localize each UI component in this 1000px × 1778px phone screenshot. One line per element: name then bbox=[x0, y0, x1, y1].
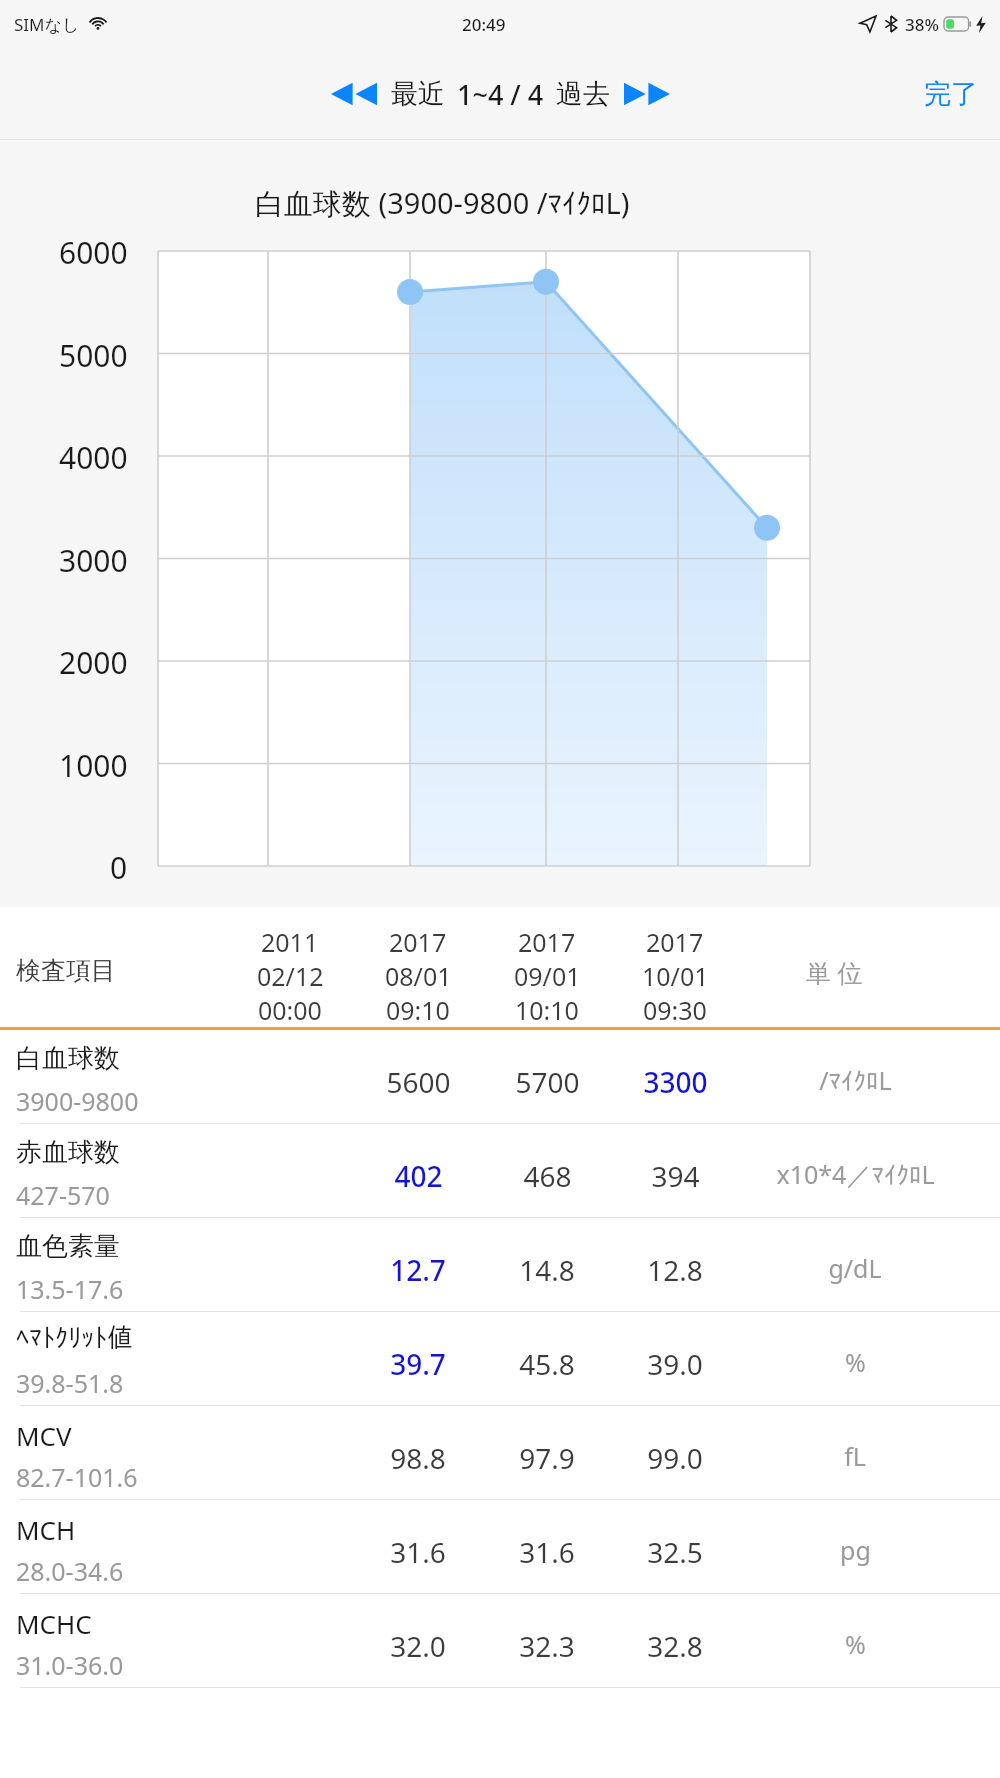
button[interactable]: ﾍﾏﾄｸﾘｯﾄ値 bbox=[0, 1312, 1000, 1406]
staticText: 過去 bbox=[556, 77, 610, 111]
staticText: 2011 bbox=[261, 925, 319, 959]
staticText: 39.7 bbox=[390, 1345, 446, 1383]
staticText: 5000 bbox=[59, 335, 128, 376]
staticText: 5700 bbox=[515, 1063, 580, 1101]
button[interactable]: MCH bbox=[0, 1500, 1000, 1594]
staticText: 13.5-17.6 bbox=[16, 1272, 124, 1306]
staticText: 468 bbox=[523, 1157, 572, 1195]
button[interactable]: 完了 bbox=[902, 63, 1000, 125]
staticText: 31.0-36.0 bbox=[16, 1648, 124, 1682]
staticText: MCHC bbox=[16, 1606, 92, 1641]
staticText: 09:30 bbox=[643, 993, 707, 1027]
staticText: 白血球数 (3900-9800 /ﾏｲｸﾛL) bbox=[255, 183, 630, 223]
staticText: 3300 bbox=[643, 1063, 708, 1101]
staticText: pg bbox=[840, 1533, 871, 1567]
staticText: 検査項目 bbox=[16, 955, 116, 986]
staticText: 45.8 bbox=[519, 1345, 575, 1383]
staticText: 31.6 bbox=[390, 1533, 446, 1571]
staticText: 14.8 bbox=[519, 1251, 575, 1289]
staticText: 99.0 bbox=[647, 1439, 703, 1477]
staticText: 赤血球数 bbox=[16, 1136, 120, 1169]
staticText: 2017 bbox=[518, 925, 576, 959]
button[interactable]: 血色素量 bbox=[0, 1218, 1000, 1312]
staticText: MCH bbox=[16, 1512, 76, 1547]
staticText: x10*4／ﾏｲｸﾛL bbox=[776, 1157, 935, 1191]
staticText: 10/01 bbox=[642, 959, 709, 993]
staticText: 5600 bbox=[386, 1063, 451, 1101]
staticText: 6000 bbox=[59, 232, 128, 273]
staticText: 97.9 bbox=[519, 1439, 575, 1477]
staticText: 2017 bbox=[646, 925, 704, 959]
staticText: ﾍﾏﾄｸﾘｯﾄ値 bbox=[16, 1324, 133, 1350]
staticText: 31.6 bbox=[519, 1533, 575, 1571]
staticText: 完了 bbox=[924, 77, 978, 111]
staticText: 09/01 bbox=[514, 959, 581, 993]
button[interactable]: 白血球数 bbox=[0, 1030, 1000, 1124]
staticText: 3000 bbox=[59, 540, 128, 581]
staticText: 1000 bbox=[59, 745, 128, 786]
staticText: /ﾏｲｸﾛL bbox=[819, 1063, 892, 1097]
staticText: 0 bbox=[110, 847, 128, 888]
staticText: 00:00 bbox=[258, 993, 322, 1027]
staticText: 2017 bbox=[389, 925, 447, 959]
staticText: 1~4 / 4 bbox=[457, 76, 544, 113]
staticText: 白血球数 bbox=[16, 1042, 120, 1075]
button[interactable]: 赤血球数 bbox=[0, 1124, 1000, 1218]
staticText: 02/12 bbox=[257, 959, 324, 993]
staticText: 32.8 bbox=[647, 1627, 703, 1665]
button[interactable]: MCHC bbox=[0, 1594, 1000, 1688]
staticText: 32.5 bbox=[647, 1533, 703, 1571]
staticText: 39.8-51.8 bbox=[16, 1366, 124, 1400]
staticText: 39.0 bbox=[647, 1345, 703, 1383]
staticText: 32.3 bbox=[519, 1627, 575, 1665]
staticText: 32.0 bbox=[390, 1627, 446, 1665]
staticText: 427-570 bbox=[16, 1178, 110, 1212]
staticText: 2000 bbox=[59, 642, 128, 683]
staticText: 4000 bbox=[59, 437, 128, 478]
staticText: 3900-9800 bbox=[16, 1084, 139, 1118]
staticText: 38% bbox=[905, 13, 939, 36]
button[interactable]: MCV bbox=[0, 1406, 1000, 1500]
staticText: 08/01 bbox=[385, 959, 452, 993]
staticText: % bbox=[845, 1627, 866, 1661]
staticText: 394 bbox=[651, 1157, 700, 1195]
staticText: 最近 bbox=[391, 77, 445, 111]
staticText: 09:10 bbox=[386, 993, 450, 1027]
staticText: % bbox=[845, 1345, 866, 1379]
staticText: 82.7-101.6 bbox=[16, 1460, 138, 1494]
button[interactable]: 過去 bbox=[618, 72, 676, 116]
staticText: 単 位 bbox=[806, 955, 863, 989]
staticText: 血色素量 bbox=[16, 1230, 120, 1263]
staticText: 98.8 bbox=[390, 1439, 446, 1477]
staticText: 10:10 bbox=[515, 993, 579, 1027]
staticText: 28.0-34.6 bbox=[16, 1554, 124, 1588]
staticText: MCV bbox=[16, 1418, 72, 1453]
staticText: g/dL bbox=[828, 1251, 882, 1285]
staticText: 12.7 bbox=[390, 1251, 446, 1289]
staticText: 402 bbox=[394, 1157, 443, 1195]
staticText: 12.8 bbox=[647, 1251, 703, 1289]
button[interactable]: 最近 bbox=[325, 72, 383, 116]
staticText: SIMなし bbox=[14, 13, 80, 36]
staticText: 20:49 bbox=[462, 13, 506, 36]
staticText: fL bbox=[844, 1439, 866, 1473]
